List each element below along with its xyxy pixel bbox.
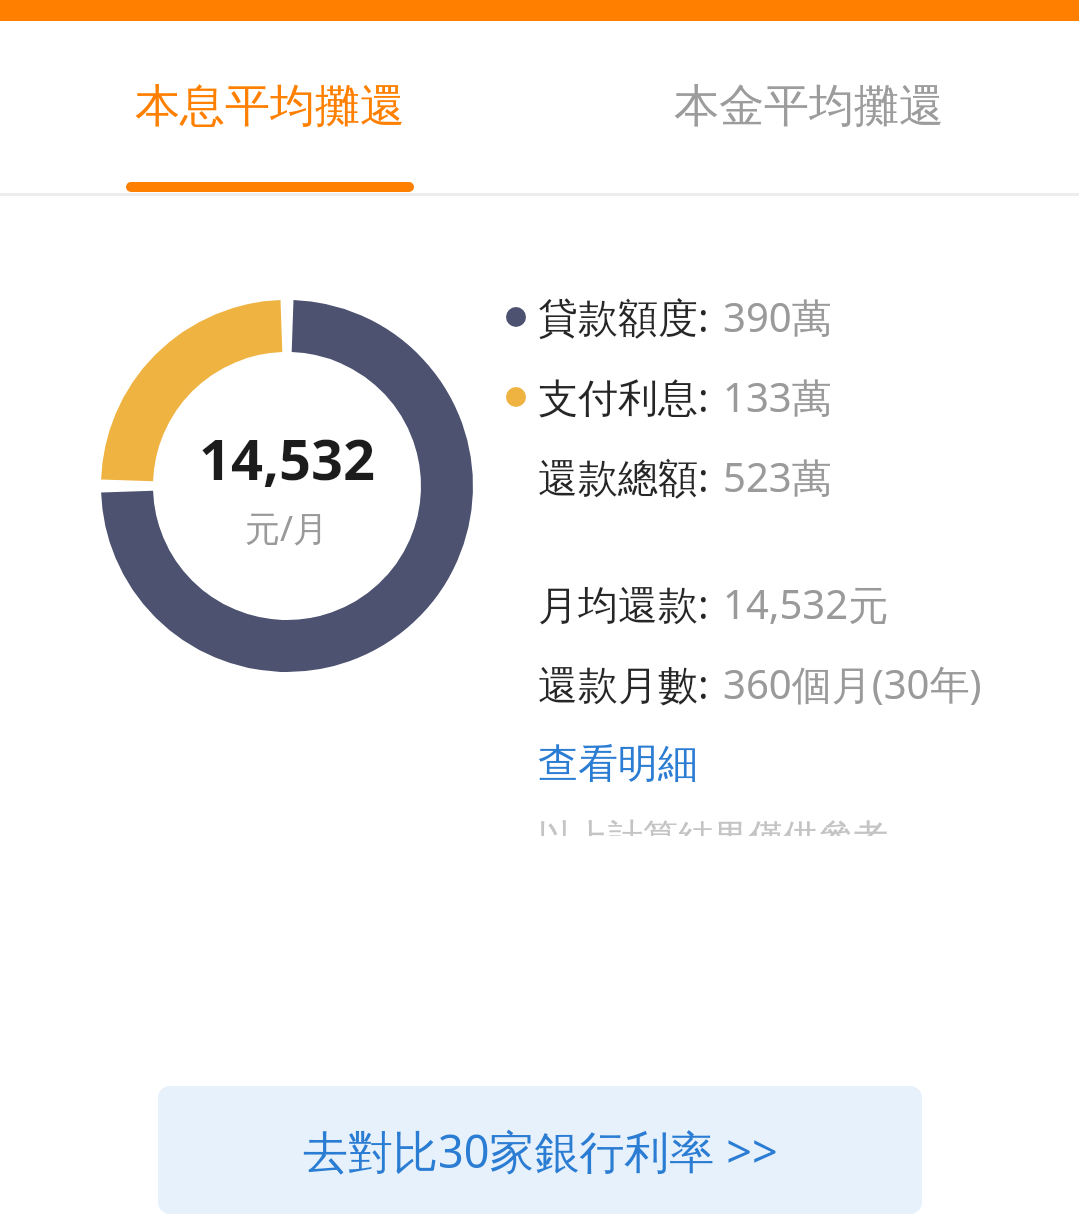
staticText: 月均還款: bbox=[538, 576, 709, 631]
staticText: 元/月 bbox=[245, 504, 329, 552]
button[interactable]: 查看明細 bbox=[500, 723, 1079, 803]
button[interactable]: 本金平均攤還 bbox=[539, 21, 1079, 193]
staticText: 查看明細 bbox=[538, 738, 698, 788]
staticText: 還款總額: bbox=[538, 449, 709, 504]
button[interactable]: 本息平均攤還 bbox=[0, 21, 539, 193]
button[interactable]: 去對比30家銀行利率 >> bbox=[158, 1086, 922, 1214]
staticText: 本金平均攤還 bbox=[674, 78, 944, 135]
staticText: 貸款額度: bbox=[538, 289, 709, 344]
staticText: 133萬 bbox=[723, 369, 832, 424]
staticText: 還款月數: bbox=[538, 656, 709, 711]
staticText: 390萬 bbox=[723, 289, 832, 344]
staticText: 去對比30家銀行利率 >> bbox=[303, 1120, 778, 1181]
staticText: 360個月(30年) bbox=[723, 656, 982, 711]
staticText: 本息平均攤還 bbox=[135, 78, 405, 135]
staticText: 523萬 bbox=[723, 449, 832, 504]
staticText: 支付利息: bbox=[538, 369, 709, 424]
staticText: 14,532元 bbox=[723, 576, 889, 631]
staticText: 以上計算結果僅供參考 bbox=[538, 815, 888, 836]
staticText: 14,532 bbox=[199, 420, 376, 496]
